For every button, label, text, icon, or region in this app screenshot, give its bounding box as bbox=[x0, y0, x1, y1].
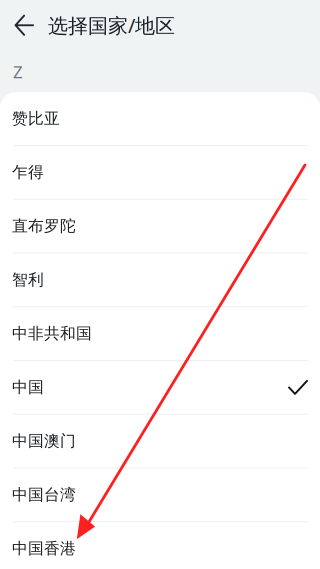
staticText: 赞比亚 bbox=[12, 109, 60, 128]
button[interactable]: 中国香港 bbox=[0, 522, 320, 569]
button[interactable]: 中国 bbox=[0, 361, 320, 414]
staticText: 中非共和国 bbox=[12, 324, 92, 343]
staticText: 中国台湾 bbox=[12, 485, 76, 505]
button[interactable]: 乍得 bbox=[0, 146, 320, 199]
button[interactable]: 中国澳门 bbox=[0, 415, 320, 467]
button[interactable]: 中国台湾 bbox=[0, 468, 320, 521]
button[interactable]: 直布罗陀 bbox=[0, 200, 320, 252]
staticText: 直布罗陀 bbox=[12, 216, 76, 236]
staticText: 乍得 bbox=[12, 162, 44, 182]
staticText: 中国 bbox=[12, 377, 44, 397]
button[interactable]: 智利 bbox=[0, 253, 320, 306]
staticText: 中国香港 bbox=[12, 539, 76, 558]
staticText: 选择国家/地区 bbox=[48, 12, 175, 39]
staticText: Z bbox=[13, 60, 23, 83]
button[interactable]: 返回 bbox=[0, 0, 48, 54]
staticText: 智利 bbox=[12, 270, 44, 290]
button[interactable]: 中非共和国 bbox=[0, 307, 320, 360]
staticText: 中国澳门 bbox=[12, 431, 76, 451]
button[interactable]: 赞比亚 bbox=[0, 92, 320, 145]
